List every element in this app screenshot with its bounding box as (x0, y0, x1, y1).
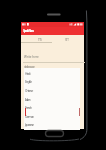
button[interactable]: STT (53, 35, 85, 43)
button[interactable]: English (24, 77, 80, 86)
button[interactable]: German (24, 112, 80, 121)
button[interactable]: TTS (21, 35, 53, 43)
staticText: TTS (38, 38, 42, 42)
staticText: Italian (25, 98, 31, 102)
button[interactable]: Japanese (24, 120, 80, 129)
button[interactable]: SpeakNow (21, 27, 84, 35)
button[interactable]: Hindi (24, 69, 80, 78)
staticText: Chinese (25, 89, 33, 93)
staticText: French (25, 106, 32, 110)
button[interactable]: Italian (24, 95, 80, 104)
staticText: English (25, 80, 32, 84)
button[interactable]: Chinese (24, 86, 80, 95)
staticText: German (25, 115, 34, 119)
staticText: Hindi (25, 72, 30, 76)
staticText: Japanese (25, 123, 34, 127)
staticText: Write here (24, 55, 39, 59)
staticText: SpeakNow (23, 28, 34, 32)
button[interactable]: French (24, 103, 80, 112)
button[interactable]: Home (45, 129, 64, 138)
staticText: STT (65, 38, 69, 42)
staticText: select language (24, 65, 35, 69)
